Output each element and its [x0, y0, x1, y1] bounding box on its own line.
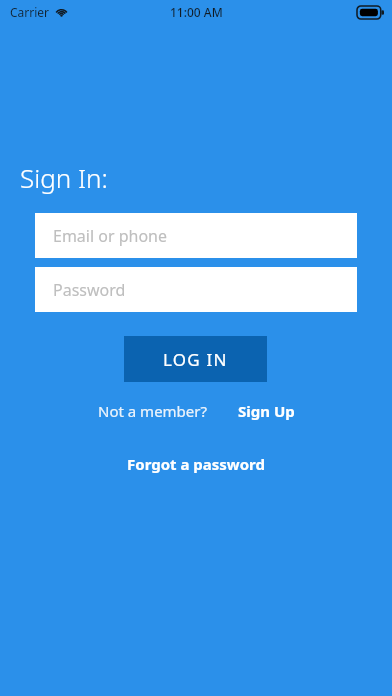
staticText: Password: [53, 279, 126, 301]
staticText: 11:00 AM: [170, 4, 223, 20]
button[interactable]: Sign Up: [238, 401, 295, 421]
button[interactable]: Password: [35, 267, 357, 312]
button[interactable]: Not a member?: [98, 401, 208, 421]
staticText: Sign In:: [20, 160, 108, 195]
button[interactable]: Email or phone: [35, 213, 357, 258]
staticText: Carrier: [10, 4, 50, 20]
button[interactable]: LOG IN: [124, 336, 267, 382]
button[interactable]: Forgot a password: [127, 454, 265, 474]
staticText: LOG IN: [163, 348, 228, 371]
staticText: Email or phone: [53, 225, 168, 247]
